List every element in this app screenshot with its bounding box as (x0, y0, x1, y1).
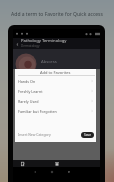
button[interactable]: Library (53, 160, 60, 167)
staticText: Dermatology (21, 44, 40, 48)
staticText: Insert New Category (18, 132, 51, 137)
button[interactable]: Back (14, 41, 20, 47)
button[interactable]: Recents (66, 169, 71, 174)
button[interactable]: Rarely Used (15, 96, 96, 106)
button[interactable]: Familiar but Forgotten (15, 106, 96, 116)
button[interactable]: Save (81, 132, 94, 138)
staticText: Abscess (41, 59, 57, 65)
staticText: Freshly Learnt (18, 89, 43, 94)
staticText: Rarely Used (18, 99, 39, 104)
button[interactable]: Home (49, 169, 54, 174)
staticText: Hands On (18, 79, 36, 84)
staticText: Add a term to Favorite for Quick access (11, 11, 103, 18)
staticText: Pathology Terminology (21, 38, 67, 44)
button[interactable]: Hands On (15, 76, 96, 86)
staticText: Save (84, 133, 91, 137)
button[interactable]: Notes (19, 160, 26, 167)
staticText: Familiar but Forgotten (18, 109, 57, 114)
staticText: Add to Favorites (40, 70, 71, 75)
button[interactable]: Freshly Learnt (15, 86, 96, 96)
button[interactable]: Back (32, 169, 37, 174)
